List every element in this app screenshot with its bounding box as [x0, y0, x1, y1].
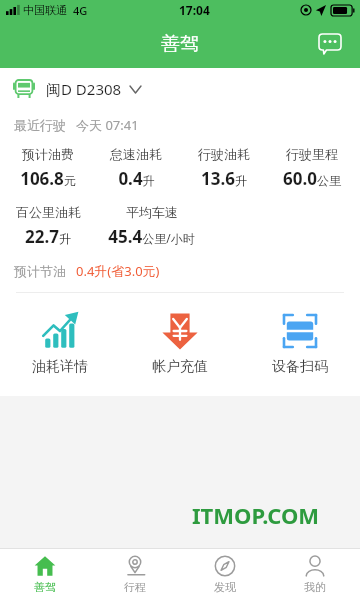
staticText: 17:04: [179, 2, 210, 18]
staticText: 油耗详情: [32, 358, 88, 376]
staticText: 平均车速: [126, 204, 178, 220]
staticText: 预计油费: [22, 146, 74, 162]
staticText: ITMOP.COM: [192, 500, 320, 530]
staticText: 最近行驶: [14, 117, 66, 133]
staticText: 今天 07:41: [76, 116, 139, 134]
staticText: 行驶里程: [286, 146, 338, 162]
staticText: 我的: [304, 580, 326, 594]
button[interactable]: 发现: [180, 549, 270, 600]
button[interactable]: 我的: [270, 549, 360, 600]
staticText: 0.4升: [118, 167, 155, 190]
staticText: 设备扫码: [272, 358, 328, 376]
staticText: 中国联通: [23, 3, 67, 17]
staticText: 行程: [124, 580, 146, 594]
button[interactable]: 设备扫码: [240, 307, 360, 380]
button[interactable]: 油耗详情: [0, 307, 120, 380]
staticText: 预计节油: [14, 263, 66, 279]
staticText: 60.0公里: [283, 167, 341, 190]
button[interactable]: 行程: [90, 549, 180, 600]
staticText: 0.4升(省3.0元): [76, 262, 160, 280]
staticText: 106.8元: [20, 167, 76, 190]
staticText: 善驾: [34, 580, 56, 594]
staticText: 发现: [214, 580, 236, 594]
staticText: 13.6升: [201, 167, 247, 190]
staticText: 22.7升: [25, 225, 71, 248]
staticText: 行驶油耗: [198, 146, 250, 162]
button[interactable]: 帐户充值: [120, 307, 240, 380]
button[interactable]: Messages: [310, 24, 350, 64]
staticText: 45.4公里/小时: [108, 225, 195, 248]
staticText: 怠速油耗: [110, 146, 162, 162]
button[interactable]: 善驾: [0, 549, 90, 600]
button[interactable]: 闽D D2308: [0, 68, 360, 110]
staticText: 帐户充值: [152, 358, 208, 376]
staticText: 善驾: [161, 32, 199, 56]
staticText: 4G: [73, 3, 88, 18]
staticText: 百公里油耗: [16, 204, 81, 220]
staticText: 闽D D2308: [46, 79, 122, 99]
